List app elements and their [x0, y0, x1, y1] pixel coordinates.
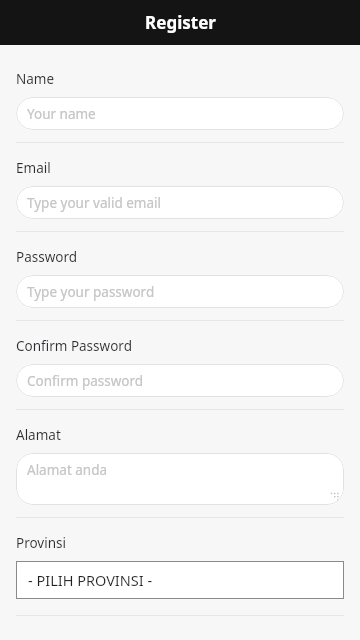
staticText: Email — [16, 159, 51, 177]
button[interactable]: Confirm password — [16, 364, 344, 397]
button[interactable]: Alamat anda — [16, 453, 344, 505]
staticText: Your name — [27, 105, 96, 123]
staticText: Type your valid email — [27, 194, 162, 212]
staticText: Confirm password — [27, 372, 144, 390]
staticText: Confirm Password — [16, 337, 132, 355]
button[interactable]: Type your password — [16, 275, 344, 308]
staticText: Alamat — [16, 426, 61, 444]
staticText: Provinsi — [16, 534, 67, 552]
button[interactable]: Your name — [16, 97, 344, 130]
button[interactable]: Pilih Provinsi — [16, 561, 344, 599]
staticText: Type your password — [27, 283, 155, 301]
staticText: Register — [145, 11, 216, 34]
button[interactable]: Type your valid email — [16, 186, 344, 219]
staticText: Alamat anda — [27, 461, 108, 479]
staticText: Name — [16, 70, 55, 88]
staticText: Password — [16, 248, 78, 266]
staticText: - PILIH PROVINSI - — [28, 570, 153, 590]
